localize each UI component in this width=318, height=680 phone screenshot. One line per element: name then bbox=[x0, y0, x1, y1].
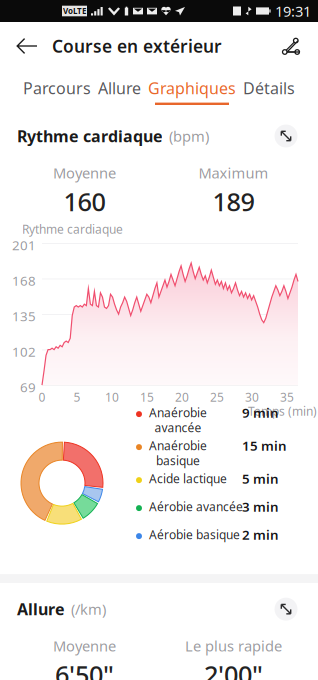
button[interactable]: Agrandir bbox=[270, 593, 302, 625]
staticText: 5 bbox=[73, 389, 80, 405]
button[interactable]: Agrandir bbox=[270, 120, 302, 152]
staticText: Moyenne bbox=[53, 636, 116, 656]
staticText: 2 min bbox=[242, 526, 279, 543]
staticText: 5 min bbox=[242, 470, 279, 487]
staticText: 201 bbox=[12, 236, 36, 254]
staticText: Aérobie avancée bbox=[149, 499, 243, 515]
staticText: Temps (min) bbox=[248, 403, 317, 419]
staticText: Rythme cardiaque bbox=[22, 221, 123, 237]
button[interactable]: Parcours bbox=[23, 70, 91, 110]
staticText: (/km) bbox=[71, 599, 106, 619]
staticText: Course en extérieur bbox=[52, 34, 222, 57]
staticText: Allure bbox=[17, 598, 65, 620]
staticText: Rythme cardiaque bbox=[17, 125, 163, 147]
staticText: Maximum bbox=[198, 163, 268, 182]
staticText: Détails bbox=[243, 77, 295, 99]
staticText: 19:31 bbox=[275, 1, 311, 21]
staticText: 30 bbox=[245, 389, 259, 405]
staticText: 160 bbox=[63, 184, 105, 218]
staticText: 168 bbox=[12, 272, 36, 289]
staticText: VoLTE bbox=[63, 6, 86, 16]
staticText: basique bbox=[156, 453, 200, 469]
staticText: 2'00" bbox=[204, 658, 263, 680]
staticText: 25 bbox=[210, 389, 224, 405]
button[interactable]: Graphiques bbox=[148, 70, 236, 110]
staticText: 0 bbox=[38, 389, 45, 405]
staticText: Le plus rapide bbox=[185, 636, 282, 656]
staticText: 9 min bbox=[242, 404, 279, 421]
staticText: Aérobie basique bbox=[149, 527, 240, 543]
staticText: Anaérobie bbox=[149, 438, 207, 454]
button[interactable]: Détails bbox=[243, 70, 295, 110]
staticText: 15 bbox=[140, 389, 154, 405]
staticText: Allure bbox=[98, 77, 141, 99]
staticText: 102 bbox=[12, 343, 36, 360]
staticText: 135 bbox=[12, 307, 36, 325]
staticText: 10 bbox=[105, 389, 119, 405]
staticText: Acide lactique bbox=[149, 471, 227, 487]
staticText: Anaérobie bbox=[149, 405, 207, 421]
staticText: Moyenne bbox=[53, 163, 116, 182]
button[interactable]: Allure bbox=[98, 70, 141, 110]
staticText: 6'50" bbox=[55, 658, 114, 680]
staticText: avancée bbox=[154, 420, 201, 436]
button[interactable]: Retour bbox=[0, 22, 52, 70]
staticText: 20 bbox=[175, 389, 189, 405]
staticText: 35 bbox=[280, 389, 294, 405]
staticText: Parcours bbox=[23, 77, 91, 99]
staticText: 3 min bbox=[242, 498, 279, 515]
staticText: 69 bbox=[20, 378, 36, 396]
button[interactable]: Partager bbox=[268, 22, 318, 70]
staticText: 189 bbox=[212, 184, 254, 218]
staticText: 15 min bbox=[242, 437, 287, 454]
staticText: (bpm) bbox=[169, 126, 209, 146]
staticText: Graphiques bbox=[148, 77, 236, 99]
